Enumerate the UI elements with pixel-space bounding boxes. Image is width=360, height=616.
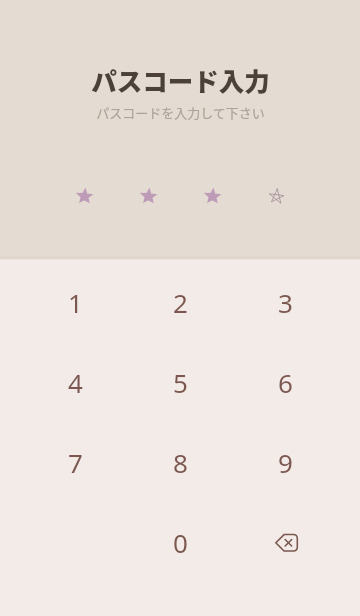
staticText: 6 [278, 365, 293, 400]
staticText: 2 [173, 285, 188, 320]
staticText: 3 [278, 285, 293, 320]
button[interactable]: 5 [128, 342, 233, 422]
staticText: 7 [68, 445, 83, 480]
button[interactable]: Delete [233, 502, 338, 582]
other: Delete [273, 529, 299, 555]
staticText: 0 [173, 525, 188, 560]
staticText: パスコード入力 [91, 61, 270, 98]
button[interactable]: 0 [128, 502, 233, 582]
staticText: 9 [278, 445, 293, 480]
button[interactable]: 9 [233, 422, 338, 502]
button[interactable]: 3 [233, 262, 338, 342]
staticText: パスコードを入力して下さい [96, 103, 265, 122]
button[interactable]: 1 [23, 262, 128, 342]
button[interactable]: 6 [233, 342, 338, 422]
staticText: 5 [173, 365, 188, 400]
staticText: 1 [68, 285, 83, 320]
staticText: 4 [68, 365, 83, 400]
button[interactable]: 7 [23, 422, 128, 502]
button[interactable]: 8 [128, 422, 233, 502]
staticText: 8 [173, 445, 188, 480]
button[interactable]: 4 [23, 342, 128, 422]
button[interactable]: 2 [128, 262, 233, 342]
